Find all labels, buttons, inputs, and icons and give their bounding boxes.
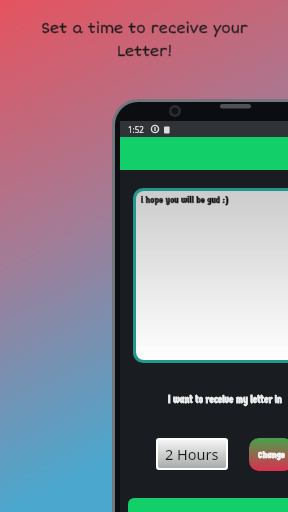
staticText: Change bbox=[258, 449, 285, 460]
button[interactable]: Change bbox=[249, 438, 288, 471]
button[interactable] bbox=[128, 498, 288, 512]
staticText: Set a time to receive your Letter! bbox=[41, 20, 248, 61]
staticText: Set a time to receive your Letter! bbox=[41, 20, 248, 61]
staticText: 2 Hours bbox=[165, 444, 219, 464]
staticText: Change bbox=[258, 449, 285, 460]
staticText: i hope you will be gud :) bbox=[141, 194, 229, 205]
staticText: I want to receive my letter in bbox=[168, 394, 283, 406]
staticText: I want to receive my letter in bbox=[168, 394, 283, 406]
button[interactable]: i hope you will be gud :) bbox=[136, 191, 288, 360]
staticText: 1:52 bbox=[128, 124, 144, 135]
staticText: i hope you will be gud :) bbox=[141, 194, 229, 205]
button[interactable]: 2 Hours bbox=[158, 440, 226, 468]
